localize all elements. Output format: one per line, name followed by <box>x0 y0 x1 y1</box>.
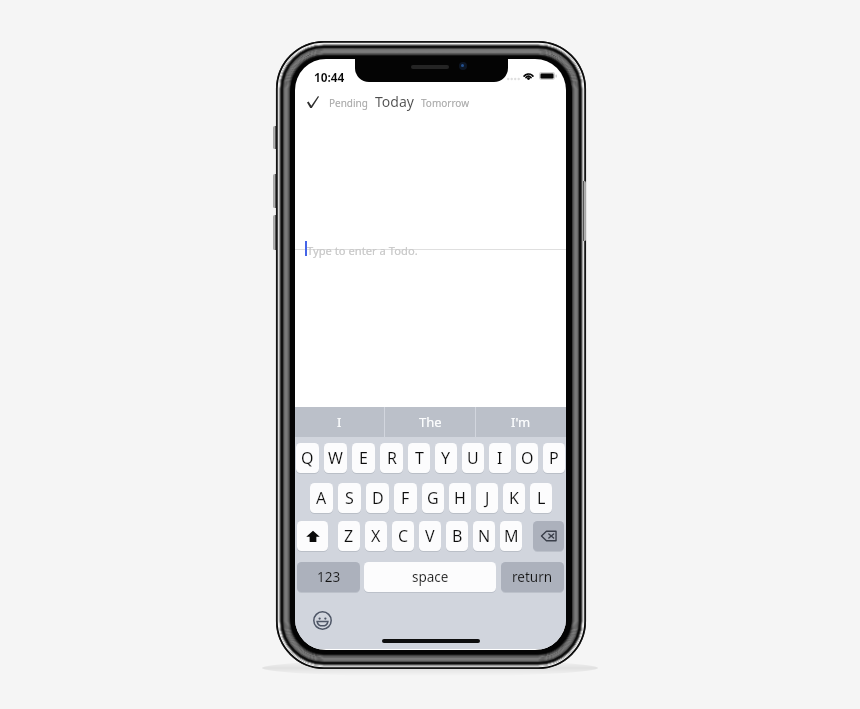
button[interactable]: U <box>462 443 484 473</box>
button[interactable]: C <box>392 521 414 551</box>
button[interactable]: Shift <box>297 521 328 551</box>
staticText: B <box>452 525 463 547</box>
staticText: R <box>387 447 397 469</box>
button[interactable]: return <box>501 562 564 592</box>
button[interactable]: R <box>380 443 403 473</box>
staticText: I <box>497 447 503 469</box>
staticText: F <box>401 487 410 509</box>
button[interactable]: F <box>394 483 417 513</box>
staticText: A <box>316 487 327 509</box>
staticText: J <box>485 487 490 509</box>
staticText: O <box>521 447 534 469</box>
button[interactable]: Q <box>296 443 319 473</box>
staticText: H <box>454 487 466 509</box>
button[interactable]: Backspace <box>533 521 564 551</box>
button[interactable]: Tomorrow <box>418 93 473 113</box>
staticText: Type to enter a Todo. <box>307 243 418 258</box>
button[interactable]: 123 <box>297 562 360 592</box>
button[interactable]: E <box>352 443 375 473</box>
button[interactable]: Type to enter a Todo. <box>303 239 558 261</box>
staticText: Q <box>301 447 314 469</box>
staticText: C <box>398 525 409 547</box>
button[interactable]: O <box>516 443 538 473</box>
staticText: P <box>549 447 559 469</box>
staticText: M <box>504 525 519 547</box>
staticText: W <box>328 447 343 469</box>
staticText: D <box>372 487 384 509</box>
button[interactable]: The <box>385 407 475 437</box>
button[interactable]: J <box>476 483 498 513</box>
staticText: U <box>467 447 479 469</box>
staticText: Tomorrow <box>421 96 470 110</box>
button[interactable]: P <box>543 443 565 473</box>
button[interactable]: L <box>530 483 552 513</box>
staticText: Y <box>441 447 451 469</box>
button[interactable]: space <box>364 562 496 592</box>
button[interactable]: Z <box>338 521 360 551</box>
button[interactable]: N <box>473 521 495 551</box>
staticText: 123 <box>317 568 341 586</box>
button[interactable]: S <box>338 483 361 513</box>
staticText: S <box>345 487 354 509</box>
button[interactable]: W <box>324 443 347 473</box>
button[interactable]: Pending <box>326 93 371 113</box>
staticText: I <box>337 413 342 431</box>
button[interactable]: M <box>500 521 522 551</box>
staticText: return <box>512 568 553 586</box>
button[interactable]: Y <box>435 443 457 473</box>
button[interactable]: T <box>408 443 430 473</box>
staticText: X <box>371 525 381 547</box>
button[interactable]: G <box>422 483 444 513</box>
button[interactable]: A <box>310 483 333 513</box>
button[interactable]: X <box>365 521 387 551</box>
button[interactable]: I'm <box>476 407 566 437</box>
button[interactable]: I <box>489 443 511 473</box>
staticText: V <box>425 525 435 547</box>
staticText: G <box>427 487 439 509</box>
staticText: N <box>478 525 491 547</box>
staticText: K <box>509 487 519 509</box>
button[interactable]: K <box>503 483 525 513</box>
button[interactable]: Emoji keyboard <box>313 611 332 630</box>
button[interactable]: D <box>366 483 389 513</box>
staticText: Z <box>344 525 354 547</box>
button[interactable]: H <box>449 483 471 513</box>
staticText: T <box>415 447 424 469</box>
staticText: E <box>359 447 368 469</box>
staticText: space <box>412 568 449 586</box>
staticText: The <box>419 413 442 431</box>
button[interactable]: I <box>295 407 384 437</box>
staticText: I'm <box>511 413 531 431</box>
button[interactable]: Completed todos <box>302 91 324 113</box>
staticText: L <box>537 487 546 509</box>
button[interactable]: B <box>446 521 468 551</box>
staticText: Pending <box>329 96 368 110</box>
staticText: Today <box>375 92 414 111</box>
button[interactable]: Today <box>372 90 417 113</box>
staticText: 10:44 <box>314 69 345 85</box>
button[interactable]: V <box>419 521 441 551</box>
